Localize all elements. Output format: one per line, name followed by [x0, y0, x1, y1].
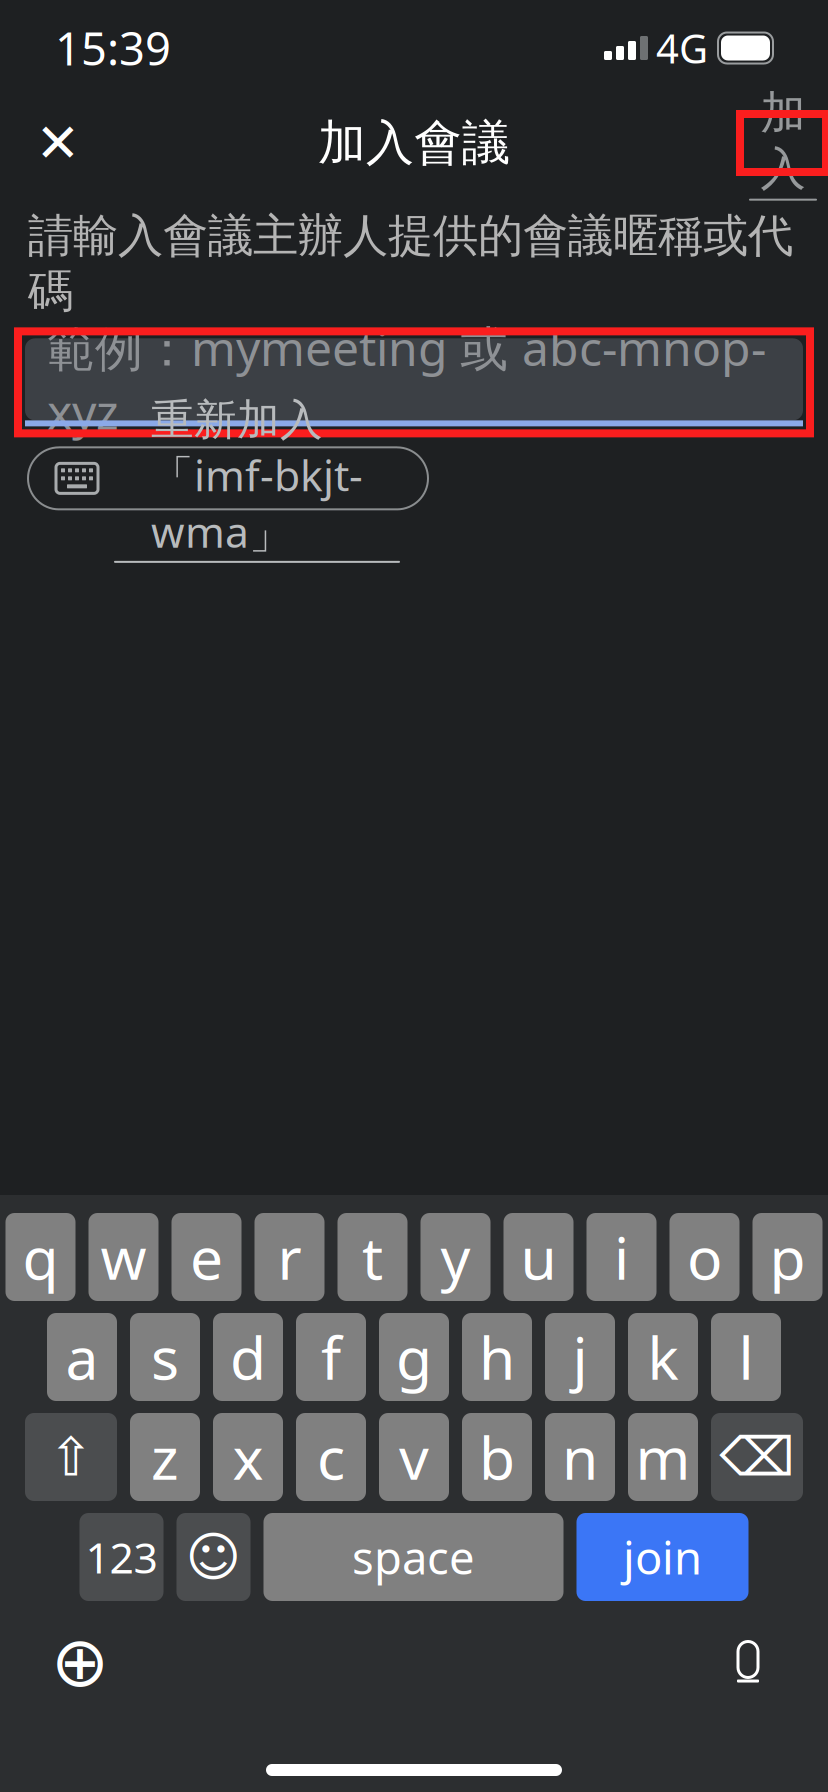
button[interactable]: ⌫	[711, 1413, 803, 1501]
staticText: d	[230, 1318, 266, 1396]
staticText: 4G	[656, 21, 708, 74]
staticText: g	[396, 1318, 432, 1396]
staticText: 15:39	[55, 18, 171, 78]
button[interactable]: u	[503, 1213, 573, 1301]
staticText: space	[352, 1527, 475, 1587]
button[interactable]: x	[213, 1413, 283, 1501]
button[interactable]: ☺	[176, 1513, 250, 1601]
button[interactable]: ⇧	[25, 1413, 117, 1501]
staticText: ⊕	[51, 1623, 109, 1701]
staticText: q	[22, 1218, 58, 1296]
button[interactable]: h	[462, 1313, 532, 1401]
staticText: 加入會議	[318, 113, 510, 172]
staticText: ⇧	[48, 1427, 93, 1487]
staticText: y	[440, 1218, 470, 1296]
staticText: 重新加入「imf-bkjt-wma」	[151, 394, 363, 560]
staticText: ✕	[35, 113, 80, 173]
staticText: u	[520, 1218, 556, 1296]
staticText: 加入	[760, 85, 805, 197]
button[interactable]: space	[263, 1513, 563, 1601]
button[interactable]: e	[171, 1213, 241, 1301]
staticText: join	[623, 1527, 702, 1587]
button[interactable]: l	[711, 1313, 781, 1401]
staticText: h	[479, 1318, 515, 1396]
button[interactable]: j	[545, 1313, 615, 1401]
staticText: p	[769, 1218, 805, 1296]
staticText: 請輸入會議主辦人提供的會議暱稱或代碼	[28, 208, 793, 319]
button[interactable]: b	[462, 1413, 532, 1501]
staticText: a	[65, 1318, 98, 1396]
staticText: 範例：mymeeting 或 abc-mnop-xyz	[47, 316, 766, 443]
button[interactable]: g	[379, 1313, 449, 1401]
staticText: s	[151, 1318, 179, 1396]
button[interactable]: v	[379, 1413, 449, 1501]
button[interactable]: 重新加入「imf-bkjt-wma」	[28, 447, 428, 509]
staticText: n	[562, 1418, 598, 1496]
staticText: v	[399, 1418, 429, 1496]
staticText: z	[151, 1418, 179, 1496]
button[interactable]: Dictation	[703, 1617, 793, 1707]
button[interactable]: join	[576, 1513, 748, 1601]
button[interactable]: w	[88, 1213, 158, 1301]
staticText: c	[317, 1418, 345, 1496]
button[interactable]: p	[752, 1213, 822, 1301]
staticText: i	[614, 1218, 629, 1296]
staticText: j	[572, 1318, 587, 1396]
button[interactable]: c	[296, 1413, 366, 1501]
button[interactable]: n	[545, 1413, 615, 1501]
staticText: 123	[85, 1529, 157, 1585]
button[interactable]: Close	[20, 110, 96, 176]
button[interactable]: 加入	[740, 114, 826, 172]
button[interactable]: z	[130, 1413, 200, 1501]
button[interactable]: 123	[79, 1513, 163, 1601]
button[interactable]: r	[254, 1213, 324, 1301]
staticText: f	[321, 1318, 341, 1396]
staticText: m	[635, 1418, 690, 1496]
button[interactable]: m	[628, 1413, 698, 1501]
staticText: ☺	[185, 1527, 241, 1587]
button[interactable]: a	[47, 1313, 117, 1401]
staticText: l	[738, 1318, 753, 1396]
staticText: o	[687, 1218, 722, 1296]
staticText: e	[190, 1218, 223, 1296]
button[interactable]: y	[420, 1213, 490, 1301]
button[interactable]: s	[130, 1313, 200, 1401]
button[interactable]: o	[669, 1213, 739, 1301]
button[interactable]: f	[296, 1313, 366, 1401]
button[interactable]: d	[213, 1313, 283, 1401]
staticText: b	[479, 1418, 515, 1496]
button[interactable]: t	[337, 1213, 407, 1301]
staticText: r	[277, 1218, 301, 1296]
button[interactable]: k	[628, 1313, 698, 1401]
button[interactable]: i	[586, 1213, 656, 1301]
staticText: x	[232, 1418, 263, 1496]
staticText: k	[647, 1318, 678, 1396]
button[interactable]: Next keyboard	[35, 1617, 125, 1707]
staticText: w	[100, 1218, 146, 1296]
button[interactable]: q	[5, 1213, 75, 1301]
staticText: t	[362, 1218, 383, 1296]
staticText: ⌫	[719, 1427, 794, 1487]
